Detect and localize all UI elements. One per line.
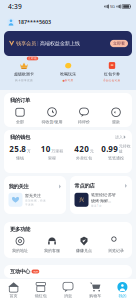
button[interactable]: 常点的店	[70, 176, 132, 214]
staticText: 万	[27, 149, 31, 154]
staticText: 我的钱包	[10, 134, 30, 141]
staticText: 立即领	[28, 57, 37, 60]
staticText: 常点的店	[74, 182, 94, 189]
staticText: 懂钱	[16, 156, 24, 161]
button[interactable]: 待收货/使用	[36, 107, 68, 124]
staticText: 吃喝玩乐	[60, 72, 76, 77]
staticText: 0.99	[101, 144, 118, 154]
staticText: 25.8	[9, 144, 26, 154]
staticText: 我的	[118, 293, 126, 298]
button[interactable]: 0.99	[100, 144, 132, 161]
staticText: 里程	[48, 156, 56, 161]
button[interactable]: 我的	[109, 281, 136, 298]
staticText: 更多功能	[10, 226, 30, 233]
staticText: 4:39	[8, 2, 22, 11]
staticText: 互动中心	[10, 268, 30, 275]
staticText: 187****5603	[18, 18, 51, 26]
button[interactable]: 420	[68, 144, 100, 161]
staticText: 添加收藏，快速	[25, 199, 46, 202]
button[interactable]: 全部	[4, 107, 36, 124]
button[interactable]: 10	[36, 144, 68, 161]
staticText: 钱享会员	[16, 40, 36, 47]
button[interactable]: 待评价	[68, 107, 100, 124]
staticText: 购物车	[89, 293, 101, 298]
staticText: 全部	[16, 119, 24, 124]
button[interactable]: 187****5603	[18, 18, 51, 26]
staticText: 兴	[79, 196, 84, 203]
staticText: 最近1次	[91, 204, 102, 207]
staticText: 5G	[109, 4, 115, 9]
staticText: 万里程	[51, 149, 63, 154]
staticText: 4张红包可用	[103, 79, 120, 82]
staticText: 待评价	[78, 119, 90, 124]
button[interactable]: 领红包	[27, 281, 54, 298]
staticText: 我的客服	[44, 248, 60, 253]
staticText: 高端权益金新上线	[40, 40, 80, 47]
staticText: 进入	[115, 135, 123, 140]
staticText: 烧烤·海鲜...	[91, 198, 111, 203]
staticText: 420	[74, 144, 89, 154]
staticText: 红包卡券	[104, 72, 120, 76]
button[interactable]: 我的地址	[4, 236, 36, 253]
staticText: 购卡部享优惠	[15, 79, 33, 82]
staticText: 我的关注	[8, 183, 28, 190]
staticText: 超级欧洲卡	[14, 72, 34, 77]
button[interactable]: 购物车	[82, 281, 109, 298]
staticText: 赚赚兑点	[76, 248, 92, 253]
button[interactable]: 我的客服	[36, 236, 68, 253]
button[interactable]: Avatar	[7, 18, 15, 26]
staticText: 10	[41, 144, 51, 154]
button[interactable]: 红包卡券	[90, 56, 134, 82]
staticText: 我的地址	[12, 248, 28, 253]
staticText: 我的订单	[10, 97, 30, 104]
staticText: 领红包	[35, 293, 47, 298]
staticText: 立即看	[113, 41, 125, 46]
button[interactable]: 立即领	[2, 56, 46, 82]
button[interactable]: 吃喝玩乐	[46, 56, 90, 82]
staticText: 笔里经纪·苏轩	[91, 192, 116, 197]
staticText: 消息	[64, 293, 72, 298]
button[interactable]: 25.8	[4, 144, 36, 161]
staticText: 不迷路	[25, 203, 34, 206]
button[interactable]: 浏览记录	[100, 236, 132, 253]
staticText: 笔笔通投	[108, 156, 124, 161]
staticText: ●券可用	[62, 79, 73, 82]
staticText: NEW	[33, 270, 38, 273]
staticText: 首页	[10, 293, 18, 298]
button[interactable]: 我的关注	[4, 176, 66, 214]
staticText	[121, 4, 122, 9]
staticText: 外卖红包	[76, 156, 92, 161]
button[interactable]: 钱享会员	[4, 31, 132, 56]
button[interactable]: 消息	[54, 281, 82, 298]
staticText: 元待收益	[119, 144, 131, 153]
button[interactable]: 互动中心	[4, 265, 132, 278]
staticText: 暂无关注	[25, 193, 41, 198]
button[interactable]: 退款	[100, 107, 132, 124]
staticText: 退款	[112, 119, 120, 124]
staticText: 浏览记录	[108, 248, 124, 253]
button[interactable]: 赚赚兑点	[68, 236, 100, 253]
button[interactable]: 进入	[115, 135, 126, 140]
button[interactable]: 首页	[0, 281, 27, 298]
staticText: 待收货/使用	[41, 119, 62, 124]
staticText: 元	[90, 149, 94, 154]
